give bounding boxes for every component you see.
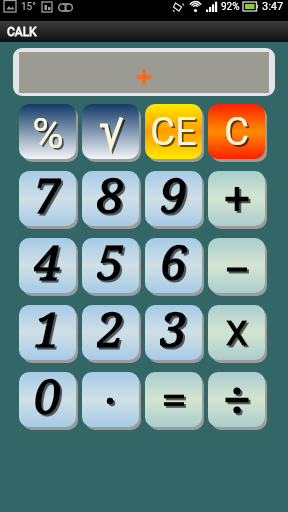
staticText: 9 bbox=[162, 171, 189, 219]
button[interactable]: √ bbox=[82, 104, 139, 159]
staticText: 8 bbox=[99, 171, 126, 219]
button[interactable]: ÷ bbox=[208, 372, 265, 427]
staticText: 5 bbox=[99, 238, 126, 286]
staticText: 9 bbox=[160, 171, 187, 217]
button[interactable]: = bbox=[145, 372, 202, 427]
staticText: 3 bbox=[160, 305, 187, 351]
staticText: 1 bbox=[36, 305, 63, 353]
staticText: 8 bbox=[97, 171, 124, 217]
button[interactable]: CALK bbox=[0, 21, 288, 42]
button[interactable]: 6 bbox=[145, 238, 202, 293]
staticText: 0 bbox=[34, 372, 61, 418]
button[interactable]: 1 bbox=[19, 305, 76, 360]
button[interactable]: 3 bbox=[145, 305, 202, 360]
button[interactable]: 5 bbox=[82, 238, 139, 293]
button[interactable]: 4 bbox=[19, 238, 76, 293]
button[interactable]: % bbox=[19, 104, 76, 159]
button[interactable]: 2 bbox=[82, 305, 139, 360]
button[interactable]: x bbox=[208, 305, 265, 360]
staticText: 0 bbox=[36, 372, 63, 420]
staticText: CE bbox=[150, 110, 197, 155]
staticText: 3 bbox=[162, 305, 189, 353]
staticText: 4 bbox=[36, 238, 63, 286]
staticText: % bbox=[32, 108, 64, 158]
staticText: X bbox=[228, 315, 250, 355]
staticText: C bbox=[226, 112, 251, 157]
button[interactable] bbox=[19, 52, 269, 93]
staticText: CALK bbox=[7, 25, 37, 39]
button[interactable]: 0 bbox=[19, 372, 76, 427]
staticText: 7 bbox=[36, 171, 63, 219]
button[interactable]: + bbox=[208, 171, 265, 226]
button[interactable]: 8 bbox=[82, 171, 139, 226]
button[interactable]: . bbox=[82, 372, 139, 427]
button[interactable]: CE bbox=[145, 104, 202, 159]
staticText: 15° bbox=[21, 1, 36, 13]
button[interactable]: C bbox=[208, 104, 265, 159]
staticText: CE bbox=[152, 112, 199, 157]
staticText: 5 bbox=[97, 238, 124, 284]
staticText: 6 bbox=[160, 238, 187, 284]
staticText: 2 bbox=[97, 305, 124, 351]
staticText: X bbox=[226, 313, 248, 353]
staticText: % bbox=[34, 110, 66, 159]
button[interactable]: 9 bbox=[145, 171, 202, 226]
staticText: 4 bbox=[34, 238, 61, 284]
staticText: 6 bbox=[162, 238, 189, 286]
staticText: 92% bbox=[221, 1, 240, 13]
staticText: 2 bbox=[99, 305, 126, 353]
staticText: 7 bbox=[34, 171, 61, 217]
staticText: 1 bbox=[34, 305, 61, 351]
button[interactable]: 7 bbox=[19, 171, 76, 226]
staticText: 3:47 bbox=[262, 0, 284, 13]
staticText: C bbox=[224, 110, 249, 155]
button[interactable]: − bbox=[208, 238, 265, 293]
